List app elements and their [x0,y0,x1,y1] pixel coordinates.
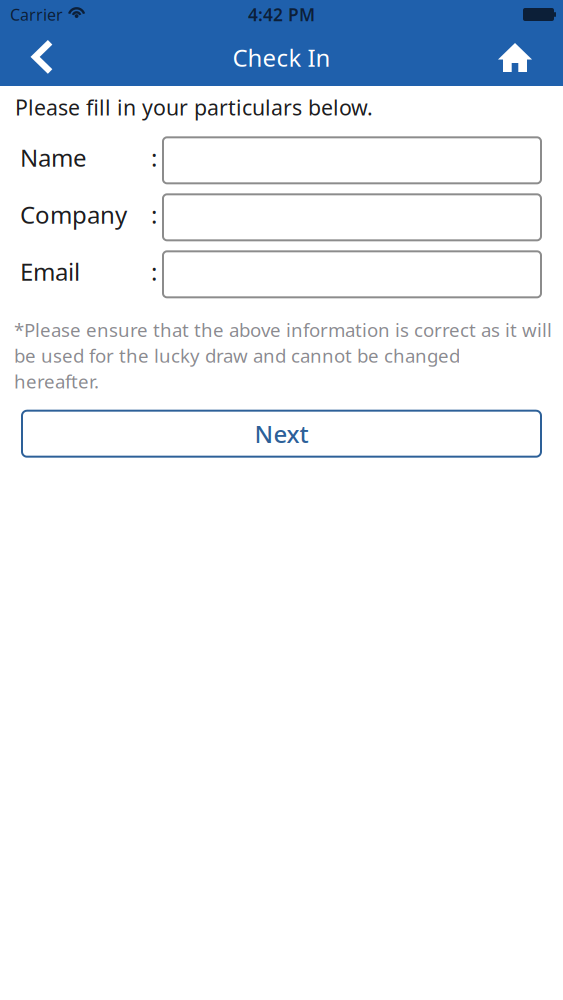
staticText: : [151,198,157,230]
staticText: *Please ensure that the above informatio… [14,317,552,342]
staticText: be used for the lucky draw and cannot be… [14,343,460,368]
staticText: hereafter. [14,369,99,394]
staticText: Name [20,141,87,173]
staticText: Check In [232,42,330,73]
button[interactable]: Back [0,29,84,86]
staticText: Next [254,418,308,450]
staticText: : [151,255,157,287]
staticText: 4:42 PM [248,3,315,26]
staticText: : [151,141,157,173]
staticText: Company [20,198,127,230]
button[interactable]: Next [22,411,541,457]
staticText: Please fill in your particulars below. [15,93,373,121]
button[interactable]: Home [467,29,563,86]
staticText: Email [20,255,80,287]
staticText: Carrier [10,4,63,25]
